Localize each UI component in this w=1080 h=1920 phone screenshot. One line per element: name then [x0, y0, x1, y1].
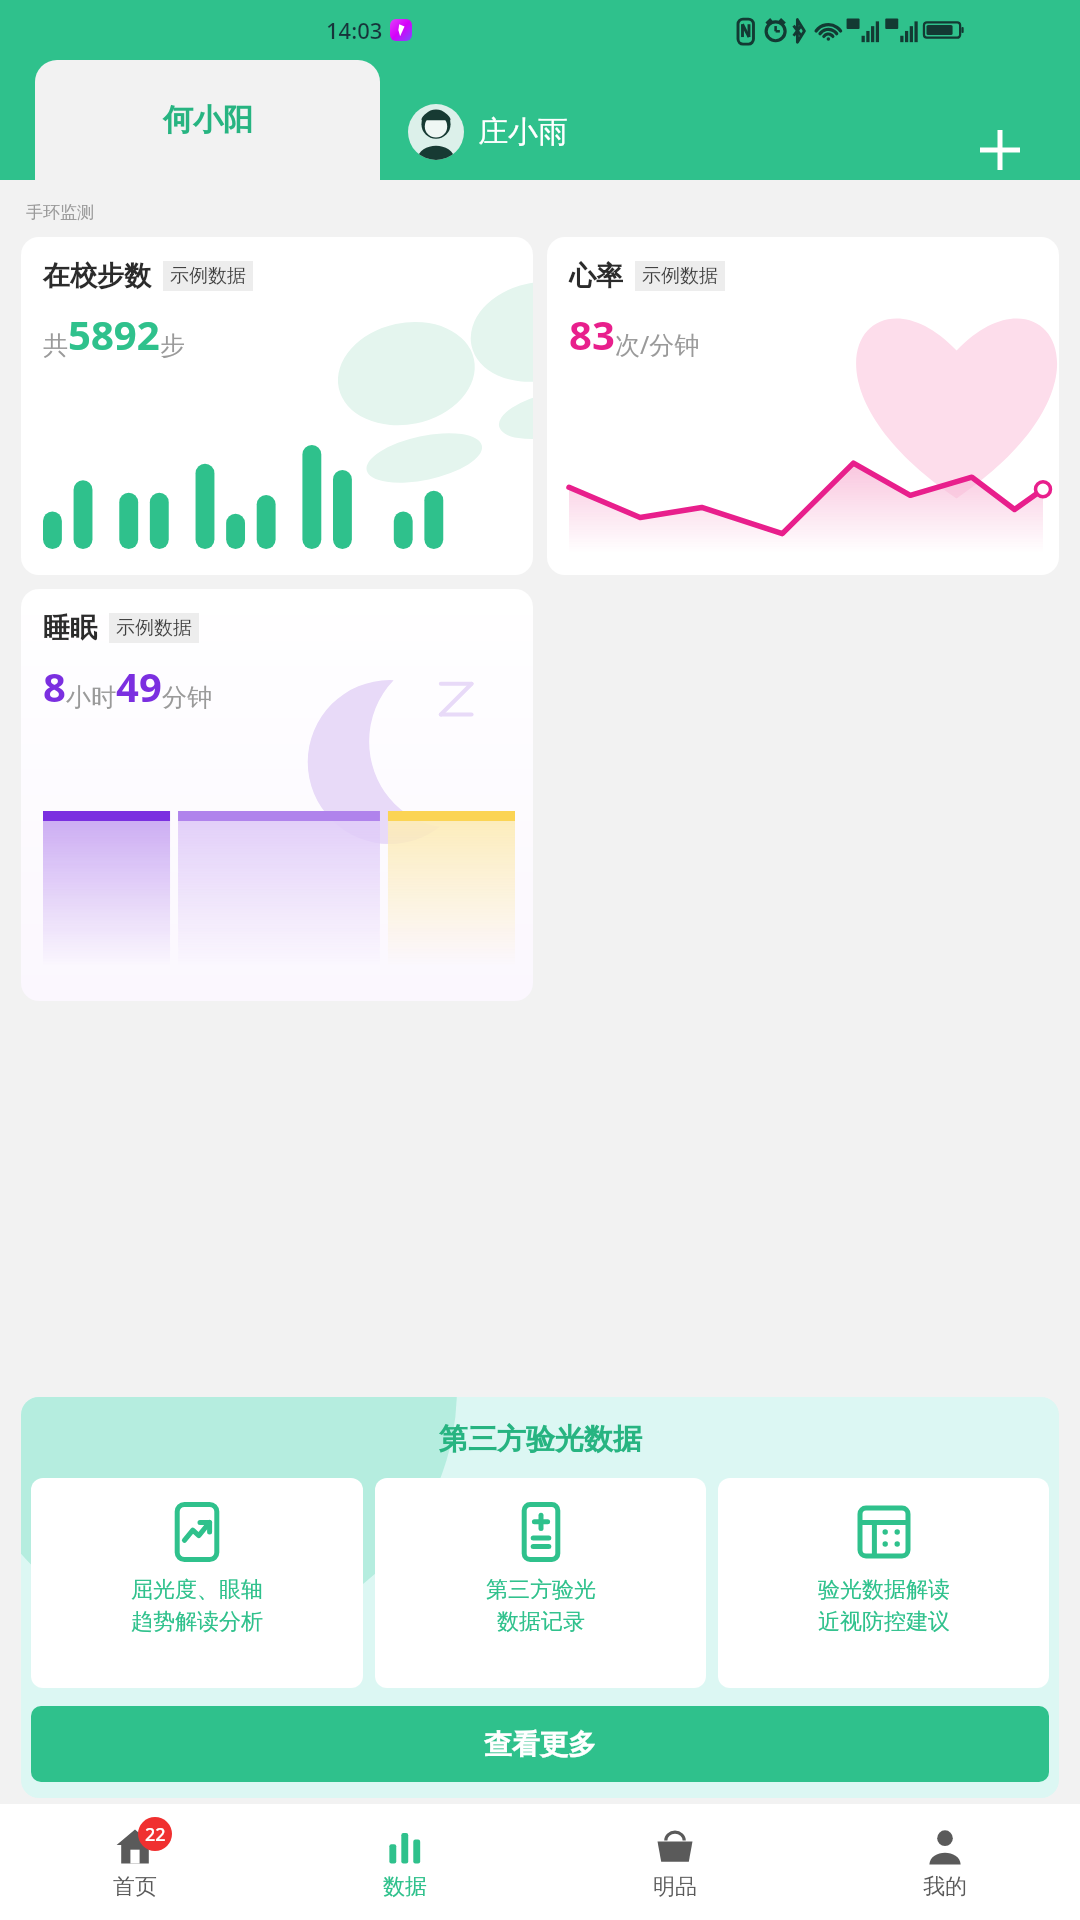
- staticText: 步: [160, 330, 185, 361]
- staticText: 示例数据: [116, 616, 192, 640]
- staticText: 14:03: [326, 15, 383, 45]
- staticText: 首页: [113, 1873, 157, 1901]
- button[interactable]: 第三方验光: [375, 1478, 706, 1688]
- button[interactable]: 数据: [270, 1804, 540, 1920]
- staticText: 在校步数: [43, 259, 151, 293]
- staticText: 我的: [923, 1873, 967, 1901]
- button[interactable]: 心率: [547, 237, 1059, 575]
- staticText: 手环监测: [26, 202, 94, 223]
- staticText: 屈光度、眼轴: [131, 1576, 263, 1604]
- button[interactable]: 添加: [970, 120, 1030, 180]
- staticText: 近视防控建议: [818, 1608, 950, 1636]
- staticText: 心率: [569, 259, 623, 293]
- button[interactable]: 屈光度、眼轴: [31, 1478, 363, 1688]
- staticText: 数据: [383, 1873, 427, 1901]
- button[interactable]: 查看更多: [31, 1706, 1049, 1782]
- staticText: 何小阳: [163, 101, 253, 139]
- button[interactable]: 明品: [540, 1804, 810, 1920]
- button[interactable]: 我的: [810, 1804, 1080, 1920]
- staticText: 83: [569, 307, 615, 361]
- staticText: 共: [43, 330, 68, 361]
- staticText: 庄小雨: [478, 113, 568, 151]
- staticText: 趋势解读分析: [131, 1608, 263, 1636]
- staticText: 明品: [653, 1873, 697, 1901]
- staticText: 示例数据: [170, 264, 246, 288]
- staticText: 22: [145, 1822, 166, 1847]
- staticText: 49: [116, 659, 162, 713]
- staticText: 查看更多: [484, 1727, 596, 1762]
- staticText: 8: [43, 659, 66, 713]
- staticText: 第三方验光数据: [439, 1421, 642, 1458]
- button[interactable]: 何小阳: [35, 60, 380, 180]
- button[interactable]: 在校步数: [21, 237, 533, 575]
- staticText: 分钟: [162, 682, 212, 713]
- button[interactable]: 庄小雨: [408, 60, 568, 180]
- button[interactable]: 睡眠: [21, 589, 533, 1001]
- button[interactable]: 验光数据解读: [718, 1478, 1049, 1688]
- button[interactable]: 22: [0, 1804, 270, 1920]
- staticText: 小时: [66, 682, 116, 713]
- staticText: 验光数据解读: [818, 1576, 950, 1604]
- staticText: 数据记录: [497, 1608, 585, 1636]
- staticText: 睡眠: [43, 611, 97, 645]
- staticText: 5892: [68, 307, 160, 361]
- staticText: 示例数据: [642, 264, 718, 288]
- staticText: 次/分钟: [615, 327, 700, 361]
- staticText: 第三方验光: [486, 1576, 596, 1604]
